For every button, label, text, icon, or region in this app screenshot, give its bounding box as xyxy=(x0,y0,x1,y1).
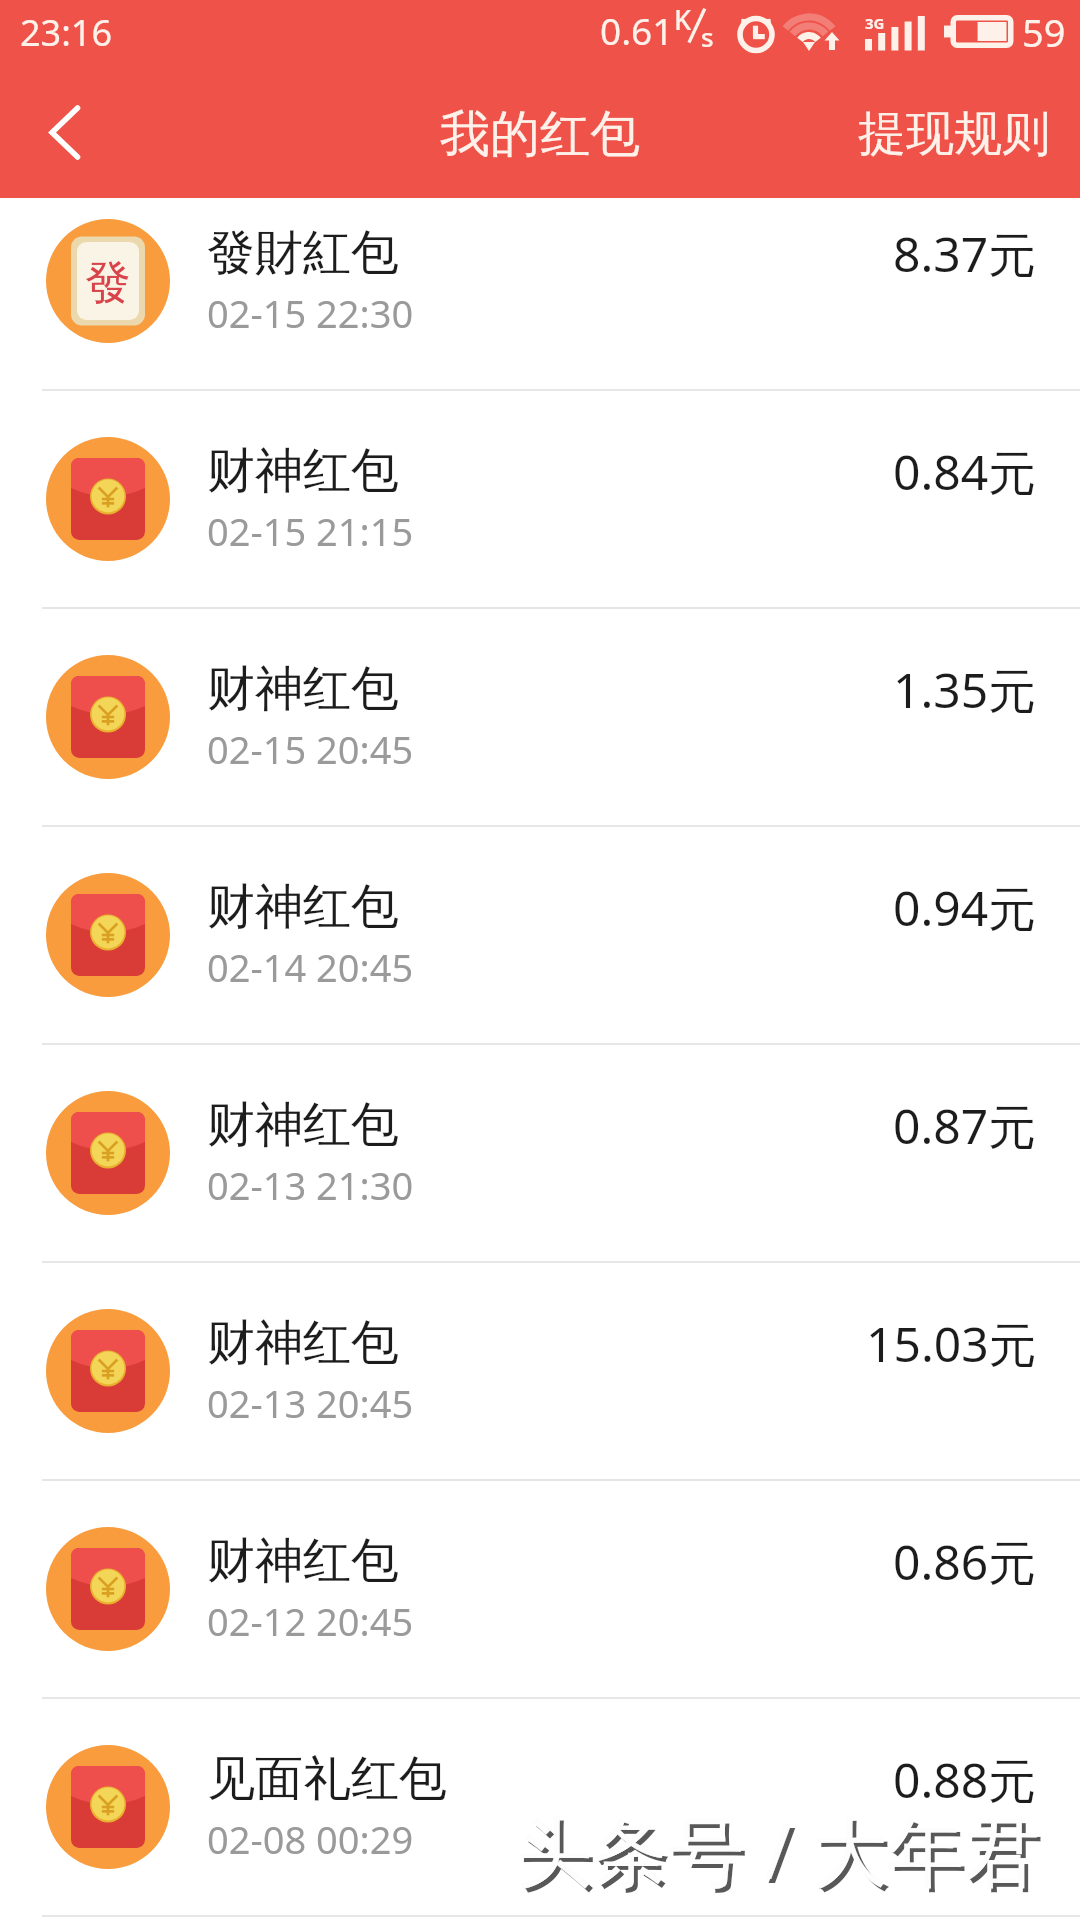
staticText: 02-15 22:30 xyxy=(207,287,414,339)
button[interactable]: Back xyxy=(0,66,124,198)
staticText: 头条号 / 大年君 xyxy=(520,1802,1044,1906)
staticText: 我的红包 xyxy=(440,103,640,166)
button[interactable]: 财神红包 xyxy=(0,1481,1080,1699)
staticText: 财神红包 xyxy=(207,1531,399,1591)
staticText: 财神红包 xyxy=(207,1313,399,1373)
button[interactable]: 见面礼红包 xyxy=(0,1699,1080,1917)
staticText: 0.84元 xyxy=(893,439,1037,505)
staticText: 财神红包 xyxy=(207,877,399,937)
staticText: 02-08 00:29 xyxy=(207,1813,414,1865)
staticText: 02-13 20:45 xyxy=(207,1377,414,1429)
staticText: 02-12 20:45 xyxy=(207,1595,414,1647)
staticText: 15.03元 xyxy=(866,1311,1037,1377)
button[interactable]: 财神红包 xyxy=(0,1263,1080,1481)
staticText: 02-13 21:30 xyxy=(207,1159,414,1211)
staticText: 59 xyxy=(1022,6,1066,58)
staticText: 财神红包 xyxy=(207,659,399,719)
staticText: 發 xyxy=(85,254,131,312)
staticText: K xyxy=(674,1,692,38)
staticText: 發財紅包 xyxy=(207,223,399,283)
staticText: 02-15 21:15 xyxy=(207,505,414,557)
staticText: 提现规则 xyxy=(858,104,1050,164)
staticText: 见面礼红包 xyxy=(207,1749,447,1809)
staticText: 23:16 xyxy=(20,8,113,57)
staticText: 头条号 / 大年君 xyxy=(516,1798,1040,1902)
staticText: 财神红包 xyxy=(207,441,399,501)
staticText: 3G xyxy=(865,13,885,33)
staticText: 02-14 20:45 xyxy=(207,941,414,993)
button[interactable]: 财神红包 xyxy=(0,827,1080,1045)
button[interactable]: 發 xyxy=(0,198,1080,391)
staticText: 0.88元 xyxy=(893,1747,1037,1813)
button[interactable]: 财神红包 xyxy=(0,1045,1080,1263)
staticText: 财神红包 xyxy=(207,1095,399,1155)
staticText: s xyxy=(701,19,714,54)
staticText: 0.87元 xyxy=(893,1093,1037,1159)
button[interactable]: 财神红包 xyxy=(0,391,1080,609)
button[interactable]: 提现规则 xyxy=(778,66,1080,198)
staticText: 1.35元 xyxy=(893,657,1037,723)
staticText: 0.94元 xyxy=(893,875,1037,941)
staticText: 0.86元 xyxy=(893,1529,1037,1595)
staticText: 02-15 20:45 xyxy=(207,723,414,775)
button[interactable]: 财神红包 xyxy=(0,609,1080,827)
staticText: 0.61 xyxy=(600,5,674,55)
staticText: 8.37元 xyxy=(893,221,1037,287)
